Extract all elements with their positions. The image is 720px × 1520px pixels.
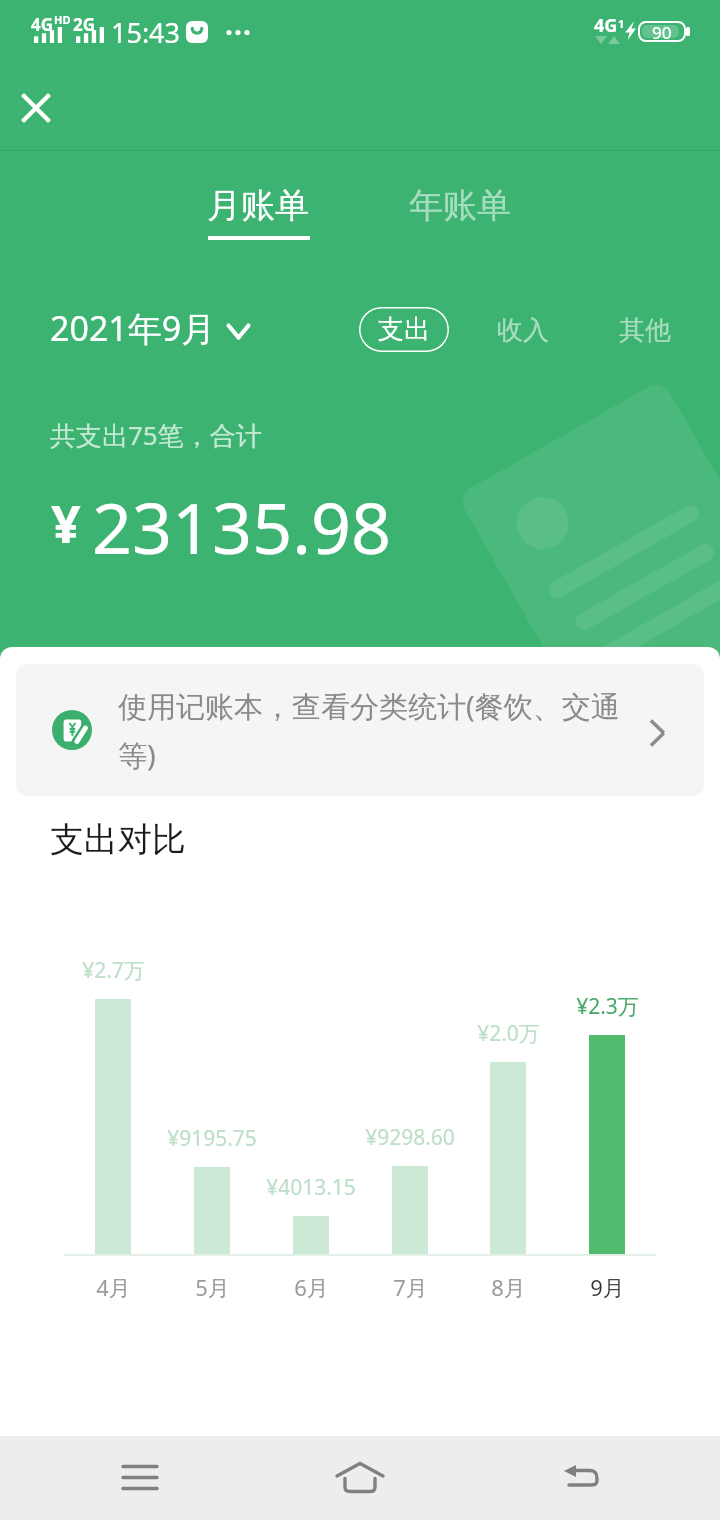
- staticText: 23135.98: [92, 479, 392, 574]
- button[interactable]: Home: [320, 1438, 400, 1518]
- button[interactable]: 支出: [359, 307, 449, 352]
- staticText: 使用记账本，查看分类统计(餐饮、交通等): [118, 686, 643, 774]
- staticText: 5月: [195, 1272, 230, 1302]
- staticText: ¥: [51, 487, 81, 558]
- staticText: 共支出75笔，合计: [50, 417, 262, 453]
- button[interactable]: 2021年9月: [50, 305, 250, 351]
- staticText: 4月: [96, 1272, 131, 1302]
- button[interactable]: Recent apps: [100, 1438, 180, 1518]
- button[interactable]: 年账单: [379, 166, 541, 246]
- staticText: 1: [618, 16, 625, 31]
- staticText: 7月: [393, 1272, 428, 1302]
- staticText: 月账单: [207, 184, 309, 227]
- button[interactable]: 月账单: [177, 166, 339, 246]
- staticText: 其他: [619, 314, 671, 347]
- staticText: ¥4013.15: [266, 1173, 356, 1202]
- staticText: ¥9195.75: [167, 1124, 257, 1153]
- staticText: 2021年9月: [50, 305, 216, 351]
- button[interactable]: 5月 ¥9195.75: [163, 977, 261, 1297]
- button[interactable]: 收入: [477, 303, 569, 357]
- button[interactable]: 9月 ¥2.3万: [558, 977, 656, 1297]
- staticText: ¥2.0万: [477, 1019, 540, 1048]
- staticText: ¥2.3万: [576, 992, 639, 1021]
- staticText: 2G: [73, 13, 96, 36]
- staticText: 年账单: [409, 184, 511, 227]
- staticText: HD: [54, 12, 71, 27]
- staticText: 6月: [294, 1272, 329, 1302]
- staticText: 9月: [590, 1272, 625, 1302]
- button[interactable]: 7月 ¥9298.60: [361, 977, 459, 1297]
- staticText: 支出对比: [50, 818, 186, 861]
- button[interactable]: 4月 ¥2.7万: [64, 977, 162, 1297]
- button[interactable]: 6月 ¥4013.15: [262, 977, 360, 1297]
- staticText: 收入: [497, 314, 549, 347]
- staticText: 支出: [378, 313, 430, 346]
- staticText: ¥9298.60: [365, 1123, 455, 1152]
- staticText: 8月: [491, 1272, 526, 1302]
- staticText: ¥2.7万: [82, 956, 145, 985]
- staticText: 4G: [594, 13, 618, 38]
- button[interactable]: 使用记账本，查看分类统计(餐饮、交通等): [16, 664, 704, 796]
- staticText: 90: [652, 21, 672, 40]
- button[interactable]: Back: [542, 1438, 622, 1518]
- button[interactable]: 8月 ¥2.0万: [459, 977, 557, 1297]
- button[interactable]: Close: [9, 81, 62, 134]
- staticText: 4G: [31, 13, 54, 36]
- button[interactable]: 其他: [599, 303, 691, 357]
- staticText: 15:43: [111, 14, 181, 51]
